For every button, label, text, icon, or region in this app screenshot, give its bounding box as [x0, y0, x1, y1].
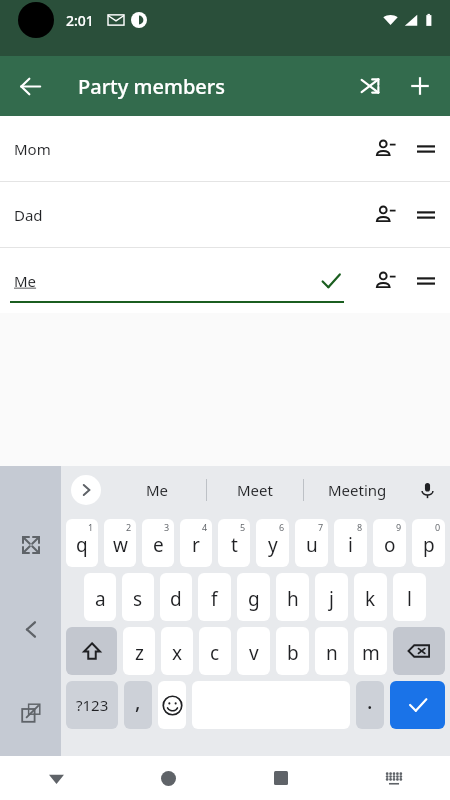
button[interactable]: m: [354, 627, 387, 675]
button[interactable]: Mom: [0, 116, 450, 181]
staticText: q: [76, 532, 88, 558]
staticText: ,: [135, 688, 141, 715]
button[interactable]: z: [123, 627, 155, 675]
staticText: t: [231, 532, 238, 558]
button[interactable]: Shuffle: [348, 64, 392, 108]
button[interactable]: Period: [356, 681, 384, 729]
staticText: 9: [396, 521, 402, 533]
staticText: w: [113, 532, 128, 558]
staticText: .: [367, 688, 373, 715]
button[interactable]: Symbols: [66, 681, 118, 729]
staticText: 2: [126, 521, 132, 533]
button[interactable]: f: [198, 573, 231, 621]
button[interactable]: x: [161, 627, 193, 675]
button[interactable]: Detach keyboard: [8, 690, 54, 736]
button[interactable]: Emoji: [158, 681, 186, 729]
staticText: 0: [435, 521, 441, 533]
button[interactable]: g: [237, 573, 270, 621]
button[interactable]: r: [180, 519, 212, 567]
button[interactable]: Reorder Me: [408, 260, 444, 302]
staticText: n: [326, 640, 338, 666]
button[interactable]: p: [412, 519, 445, 567]
staticText: j: [329, 586, 334, 612]
button[interactable]: Reorder Dad: [408, 194, 444, 236]
button[interactable]: Add member: [398, 64, 442, 108]
button[interactable]: Home: [112, 756, 224, 800]
button[interactable]: s: [122, 573, 154, 621]
staticText: o: [384, 532, 396, 558]
staticText: Me: [14, 271, 37, 291]
staticText: u: [306, 532, 318, 558]
button[interactable]: Meet: [207, 466, 303, 513]
button[interactable]: v: [237, 627, 270, 675]
button[interactable]: Comma: [124, 681, 152, 729]
button[interactable]: q: [66, 519, 98, 567]
staticText: d: [170, 586, 182, 612]
button[interactable]: More suggestions: [71, 475, 101, 505]
button[interactable]: Remove Mom: [362, 126, 408, 172]
staticText: c: [210, 640, 220, 666]
button[interactable]: Me: [0, 248, 362, 313]
staticText: 6: [279, 521, 285, 533]
button[interactable]: u: [295, 519, 328, 567]
button[interactable]: Resize keyboard: [8, 522, 54, 568]
staticText: Party members: [78, 73, 225, 100]
staticText: m: [362, 640, 380, 666]
button[interactable]: n: [315, 627, 348, 675]
button[interactable]: Recents: [224, 756, 337, 800]
staticText: p: [423, 532, 435, 558]
button[interactable]: c: [199, 627, 231, 675]
button[interactable]: Move left: [8, 606, 54, 652]
button[interactable]: Remove Dad: [362, 192, 408, 238]
staticText: h: [287, 586, 299, 612]
staticText: Dad: [14, 205, 43, 225]
staticText: Meeting: [328, 480, 387, 500]
staticText: Mom: [14, 139, 51, 159]
button[interactable]: Dad: [0, 182, 450, 247]
staticText: 5: [240, 521, 246, 533]
staticText: r: [192, 532, 200, 558]
staticText: Meet: [237, 480, 273, 500]
button[interactable]: y: [256, 519, 289, 567]
staticText: e: [153, 532, 164, 558]
button[interactable]: d: [160, 573, 192, 621]
staticText: z: [135, 640, 144, 666]
button[interactable]: o: [373, 519, 406, 567]
staticText: 2:01: [66, 11, 94, 30]
staticText: l: [407, 586, 412, 612]
staticText: i: [348, 532, 353, 558]
staticText: 7: [318, 521, 324, 533]
button[interactable]: l: [393, 573, 426, 621]
button[interactable]: Reorder Mom: [408, 128, 444, 170]
staticText: s: [133, 586, 143, 612]
button[interactable]: Back: [0, 756, 112, 800]
button[interactable]: Meeting: [304, 466, 410, 513]
button[interactable]: h: [276, 573, 309, 621]
button[interactable]: Backspace: [393, 627, 445, 675]
staticText: 1: [88, 521, 94, 533]
staticText: f: [211, 586, 218, 612]
button[interactable]: Me: [109, 466, 206, 513]
button[interactable]: Voice input: [410, 473, 444, 507]
button[interactable]: i: [334, 519, 367, 567]
button[interactable]: Change keyboard: [337, 756, 450, 800]
staticText: g: [248, 586, 260, 612]
button[interactable]: w: [104, 519, 136, 567]
staticText: 8: [357, 521, 363, 533]
staticText: a: [95, 586, 106, 612]
button[interactable]: Remove Me: [362, 258, 408, 304]
staticText: b: [287, 640, 299, 666]
button[interactable]: Shift: [66, 627, 117, 675]
button[interactable]: b: [276, 627, 309, 675]
button[interactable]: j: [315, 573, 348, 621]
button[interactable]: e: [142, 519, 174, 567]
button[interactable]: Enter: [390, 681, 445, 729]
button[interactable]: t: [218, 519, 250, 567]
staticText: k: [365, 586, 376, 612]
button[interactable]: Back: [8, 64, 52, 108]
button[interactable]: k: [354, 573, 387, 621]
staticText: 3: [164, 521, 170, 533]
staticText: v: [249, 640, 259, 666]
button[interactable]: a: [84, 573, 116, 621]
